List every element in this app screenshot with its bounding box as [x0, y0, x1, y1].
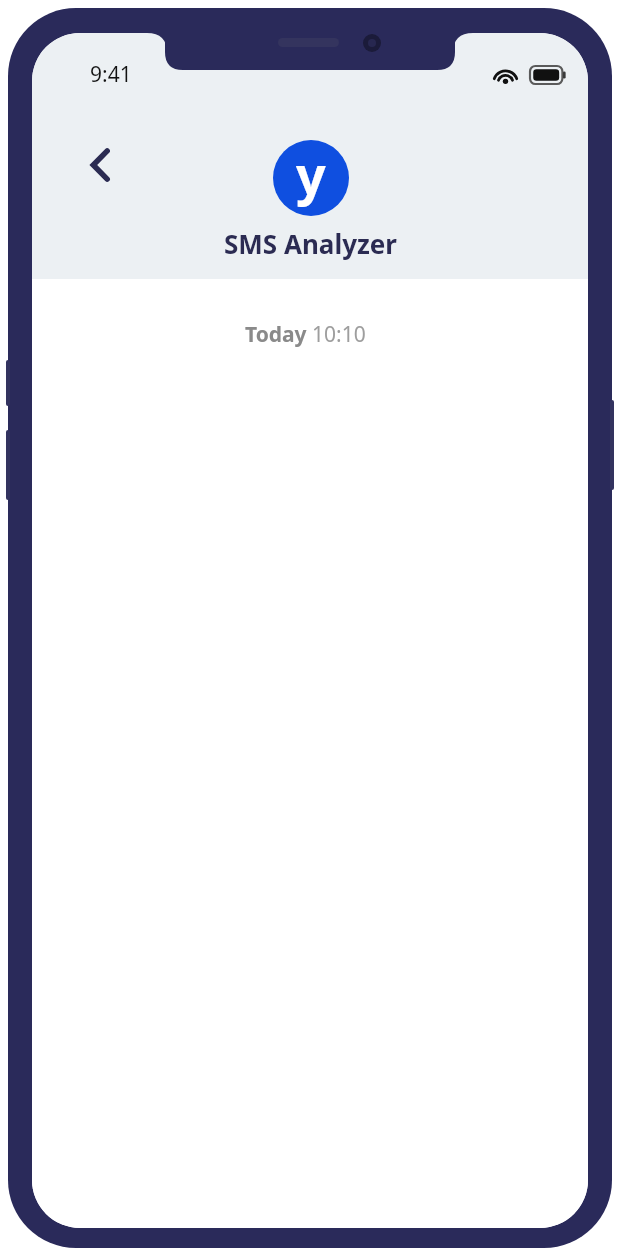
staticText: SMS Analyzer [224, 226, 397, 261]
staticText: y [296, 140, 326, 209]
button[interactable]: Back [76, 141, 124, 189]
staticText: 9:41 [90, 60, 132, 89]
staticText: Today 10:10 [245, 320, 366, 349]
